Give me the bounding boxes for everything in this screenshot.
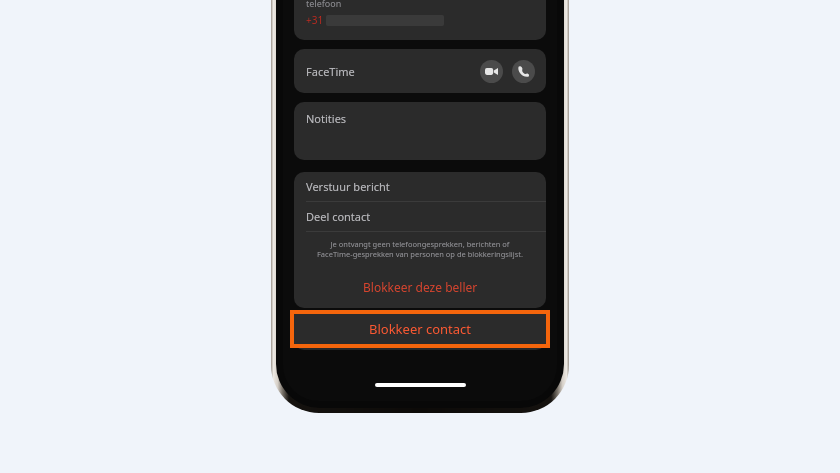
button[interactable]: Verstuur bericht (294, 172, 546, 201)
staticText: Notities (306, 111, 347, 126)
staticText: Blokkeer deze beller (363, 279, 478, 295)
button[interactable]: Bel (512, 60, 535, 83)
staticText: Verstuur bericht (306, 179, 390, 194)
staticText: Blokkeer contact (369, 320, 472, 338)
button[interactable]: Notities (294, 102, 546, 160)
button[interactable]: Deel contact (294, 202, 546, 231)
button[interactable]: Blokkeer deze beller (294, 266, 546, 308)
staticText: telefoon (306, 0, 342, 9)
button[interactable]: telefoon (294, 0, 546, 40)
staticText: FaceTime (306, 64, 355, 79)
staticText: Je ontvangt geen telefoongesprekken, ber… (314, 239, 526, 259)
staticText: Annuleer (392, 322, 449, 340)
button[interactable]: Annuleer (294, 312, 546, 350)
staticText: +31 (306, 13, 324, 27)
button[interactable]: FaceTime video (480, 60, 503, 83)
staticText: Deel contact (306, 209, 371, 224)
button[interactable]: FaceTime (294, 49, 546, 93)
